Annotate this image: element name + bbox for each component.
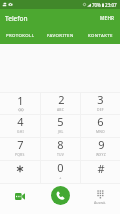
staticText: 70% bbox=[92, 2, 101, 8]
staticText: Telefon bbox=[5, 14, 28, 23]
staticText: 0 bbox=[57, 160, 64, 175]
staticText: MNO bbox=[96, 129, 105, 134]
button[interactable]: 6 bbox=[81, 115, 120, 137]
button[interactable]: Video call bbox=[0, 184, 40, 214]
button[interactable]: FAVORITEN bbox=[40, 27, 80, 44]
staticText: 23:07 bbox=[105, 2, 117, 8]
staticText: 3 bbox=[97, 92, 104, 107]
staticText: WXYZ bbox=[96, 152, 106, 157]
staticText: 9 bbox=[98, 137, 105, 152]
staticText: 4 bbox=[17, 114, 24, 129]
staticText: KONTAKTE bbox=[88, 32, 113, 38]
staticText: TUV bbox=[57, 152, 64, 157]
button[interactable]: 0 bbox=[41, 161, 80, 183]
staticText: DEF bbox=[97, 107, 104, 112]
staticText: 8 bbox=[57, 137, 64, 152]
staticText: # bbox=[97, 161, 105, 176]
staticText: 6 bbox=[97, 114, 104, 129]
button[interactable]: # bbox=[81, 161, 120, 183]
staticText: Auswä. bbox=[94, 200, 107, 205]
button[interactable]: Auswahl bbox=[80, 184, 120, 214]
button[interactable]: 4 bbox=[0, 115, 40, 137]
staticText: 7 bbox=[17, 137, 24, 152]
staticText: 5 bbox=[57, 114, 64, 129]
button[interactable]: 1 bbox=[0, 93, 40, 114]
staticText: 2 bbox=[58, 92, 65, 107]
button[interactable]: 8 bbox=[41, 138, 80, 160]
button[interactable]: MEHR bbox=[95, 9, 120, 27]
button[interactable]: 2 bbox=[41, 93, 80, 114]
button[interactable]: 7 bbox=[0, 138, 40, 160]
staticText: + bbox=[59, 175, 62, 181]
staticText: GHI bbox=[17, 129, 24, 134]
staticText: FAVORITEN bbox=[47, 32, 74, 38]
staticText: MEHR bbox=[100, 15, 115, 21]
staticText: PROTOKOLL bbox=[6, 32, 35, 38]
button[interactable]: KONTAKTE bbox=[80, 27, 120, 44]
staticText: JKL bbox=[58, 129, 64, 134]
button[interactable]: Call bbox=[40, 184, 80, 214]
staticText: ABC bbox=[57, 107, 65, 112]
button[interactable]: PROTOKOLL bbox=[0, 27, 40, 44]
button[interactable]: 9 bbox=[81, 138, 120, 160]
staticText: 1 bbox=[17, 93, 24, 108]
staticText: PQRS bbox=[15, 152, 25, 157]
button[interactable]: 3 bbox=[81, 93, 120, 114]
button[interactable] bbox=[0, 161, 40, 183]
button[interactable]: 5 bbox=[41, 115, 80, 137]
